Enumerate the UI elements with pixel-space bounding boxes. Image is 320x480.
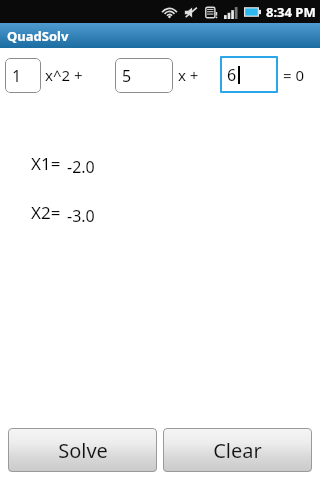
staticText: Solve	[58, 437, 108, 464]
button[interactable]: 6	[220, 56, 278, 93]
staticText: Clear	[213, 437, 262, 464]
staticText: 5	[122, 65, 132, 87]
staticText: = 0	[283, 65, 305, 85]
button[interactable]: Solve	[8, 428, 157, 472]
staticText: 8:34 PM	[266, 3, 316, 21]
staticText: X2=	[31, 201, 61, 224]
staticText: -2.0	[67, 156, 95, 178]
staticText: 1	[12, 65, 22, 87]
staticText: 6	[227, 64, 237, 86]
staticText: QuadSolv	[7, 27, 69, 45]
button[interactable]: 5	[115, 58, 173, 93]
button[interactable]: 1	[5, 58, 41, 93]
button[interactable]: Clear	[163, 428, 312, 472]
staticText: -3.0	[67, 205, 95, 227]
staticText: x +	[178, 65, 199, 85]
staticText: X1=	[31, 152, 61, 175]
staticText: x^2 +	[45, 65, 83, 85]
